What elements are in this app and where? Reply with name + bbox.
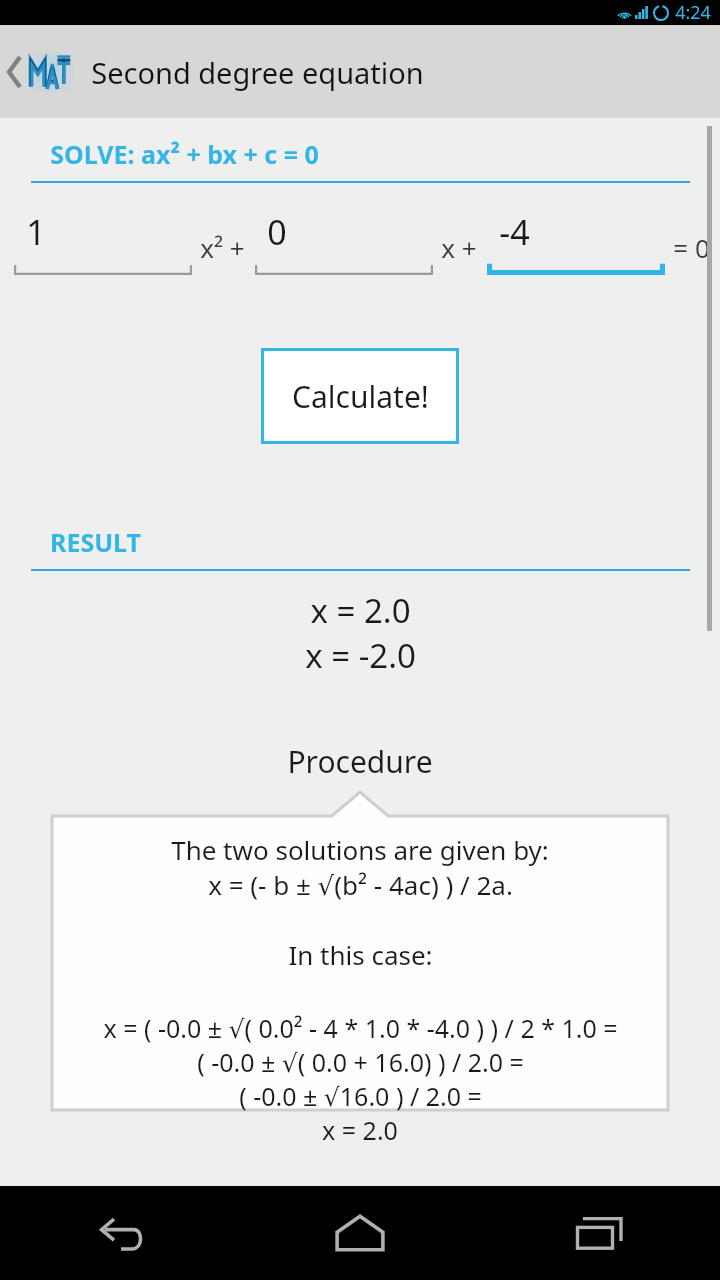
staticText: ( -0.0 ± √16.0 ) / 2.0 = (239, 1079, 482, 1113)
button[interactable]: Recent apps (480, 1186, 720, 1280)
staticText: The two solutions are given by: (171, 832, 549, 867)
staticText: Second degree equation (91, 53, 424, 92)
button[interactable]: Back (0, 1186, 240, 1280)
staticText: RESULT (50, 525, 141, 559)
staticText: ( -0.0 ± √( 0.0 + 16.0) ) / 2.0 = (197, 1045, 524, 1079)
staticText: Procedure (287, 741, 433, 782)
button[interactable]: 1 (14, 198, 192, 275)
staticText: x² + (200, 230, 245, 265)
staticText: x = 2.0 (322, 1113, 398, 1147)
staticText: x = 2.0 (310, 588, 411, 633)
staticText: x = ( -0.0 ± √( 0.0² - 4 * 1.0 * -4.0 ) … (103, 1011, 618, 1045)
button[interactable]: 0 (255, 198, 433, 275)
staticText: 0 (267, 209, 287, 255)
staticText: x = -2.0 (305, 633, 416, 678)
staticText: In this case: (288, 937, 433, 972)
staticText: SOLVE: ax² + bx + c = 0 (50, 137, 319, 171)
staticText: x = (- b ± √(b² - 4ac) ) / 2a. (208, 867, 513, 902)
staticText: x + (441, 230, 477, 265)
button[interactable]: Home (240, 1186, 480, 1280)
button[interactable]: -4 (487, 198, 665, 275)
staticText: 1 (26, 209, 46, 255)
staticText: = 0 (673, 230, 710, 265)
staticText: -4 (499, 209, 530, 255)
button[interactable]: Calculate! (264, 351, 456, 441)
staticText: Calculate! (292, 376, 429, 417)
button[interactable]: Navigate up (0, 44, 77, 100)
staticText: 4:24 (675, 0, 711, 25)
